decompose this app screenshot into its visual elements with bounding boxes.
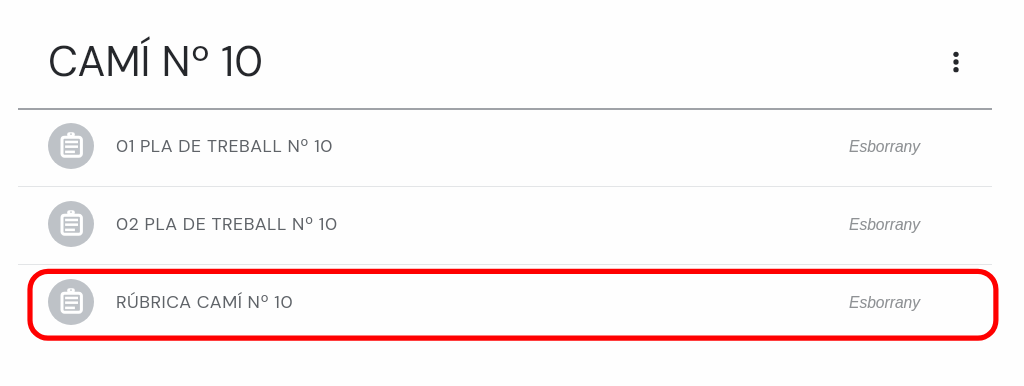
button[interactable]: 02 PLA DE TREBALL Nº 10 — [0, 185, 1024, 263]
button[interactable]: RÚBRICA CAMÍ Nº 10 — [0, 263, 1024, 341]
button[interactable]: 01 PLA DE TREBALL Nº 10 — [0, 107, 1024, 185]
staticText: RÚBRICA CAMÍ Nº 10 — [116, 290, 294, 313]
staticText: Esborrany — [849, 294, 921, 311]
staticText: 02 PLA DE TREBALL Nº 10 — [116, 212, 338, 235]
button[interactable]: More options — [932, 38, 980, 86]
staticText: 01 PLA DE TREBALL Nº 10 — [116, 134, 334, 157]
staticText: CAMÍ Nº 10 — [48, 34, 263, 89]
staticText: Esborrany — [849, 138, 921, 155]
staticText: Esborrany — [849, 216, 921, 233]
